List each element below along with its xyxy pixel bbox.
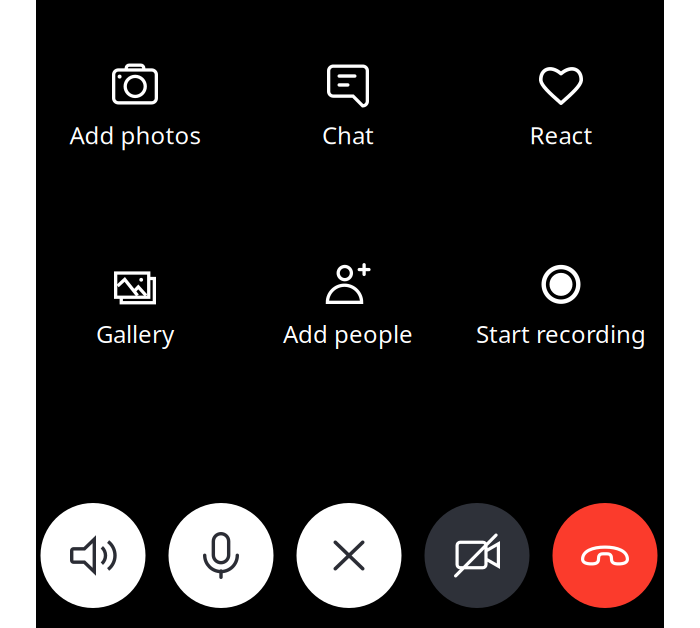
staticText: Chat <box>322 119 374 151</box>
staticText: Start recording <box>476 318 646 350</box>
button[interactable]: Close <box>296 503 401 608</box>
button[interactable]: Mute <box>168 503 273 608</box>
staticText: Gallery <box>96 318 174 350</box>
staticText: Add photos <box>69 119 200 151</box>
button[interactable]: Start recording <box>454 262 667 350</box>
button[interactable]: Speaker <box>40 503 145 608</box>
button[interactable]: Add photos <box>28 61 241 151</box>
button[interactable]: React <box>454 61 667 151</box>
button[interactable]: Chat <box>241 61 454 151</box>
staticText: Add people <box>283 318 413 350</box>
staticText: React <box>529 119 592 151</box>
button[interactable]: Gallery <box>28 262 241 350</box>
button[interactable]: Add people <box>241 262 454 350</box>
button[interactable]: End call <box>552 503 657 608</box>
button[interactable]: Turn camera off <box>424 503 529 608</box>
